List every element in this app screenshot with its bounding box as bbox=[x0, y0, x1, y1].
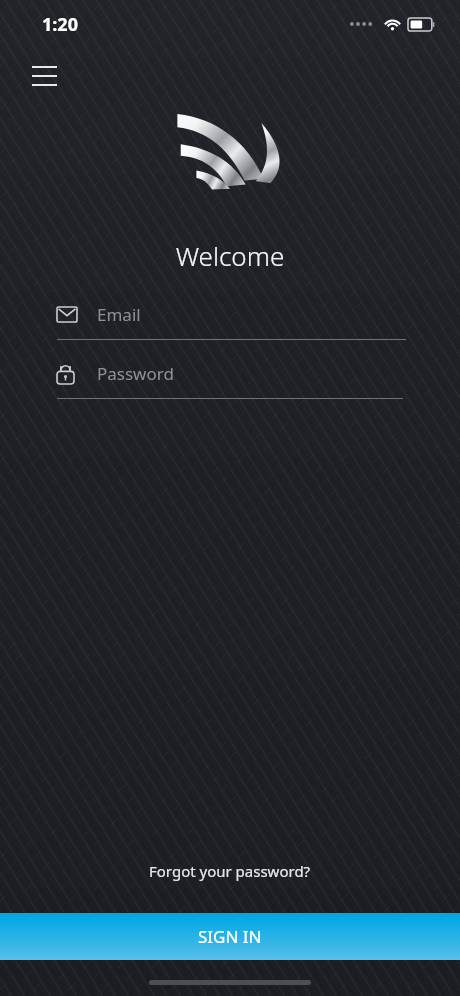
button[interactable]: SIGN IN bbox=[0, 913, 460, 960]
staticText: SIGN IN bbox=[198, 925, 262, 948]
button[interactable]: Email bbox=[0, 303, 460, 326]
staticText: Forgot your password? bbox=[149, 861, 311, 881]
staticText: Welcome bbox=[0, 238, 460, 273]
staticText: Email bbox=[97, 303, 141, 326]
button[interactable]: Menu bbox=[22, 54, 66, 98]
staticText: 1:20 bbox=[42, 12, 78, 37]
button[interactable]: Password bbox=[0, 362, 460, 385]
staticText: Password bbox=[97, 362, 174, 385]
button[interactable]: Forgot your password? bbox=[0, 851, 460, 891]
